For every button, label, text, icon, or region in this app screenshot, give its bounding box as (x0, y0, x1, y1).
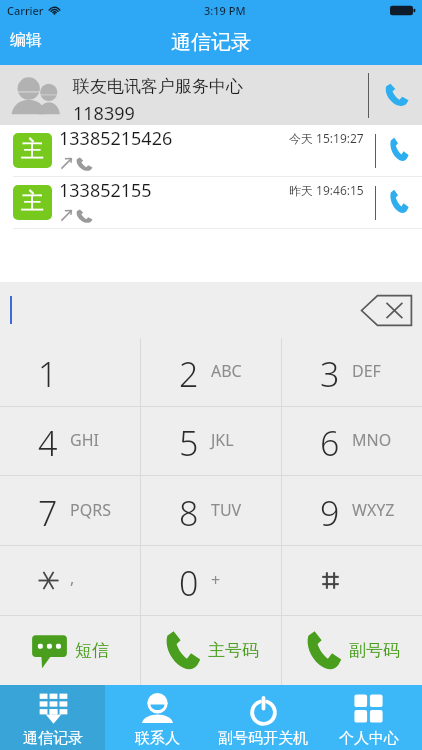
staticText: Carrier (7, 3, 44, 18)
button[interactable]: Call (376, 125, 422, 176)
button[interactable]: 编辑 (0, 22, 52, 58)
button[interactable]: 副号码 (282, 616, 422, 685)
staticText: 4 (38, 420, 58, 466)
button[interactable]: , (0, 546, 140, 615)
staticText: + (211, 569, 221, 591)
button[interactable]: Call (369, 65, 422, 125)
button[interactable]: 个人中心 (316, 685, 422, 750)
button[interactable]: 6 (282, 407, 422, 475)
button[interactable]: 5 (141, 407, 281, 475)
staticText: 6 (320, 420, 340, 466)
staticText: 通信记录 (171, 30, 251, 55)
staticText: ABC (211, 360, 242, 382)
button[interactable]: 2 (141, 338, 281, 406)
staticText: 2 (179, 351, 199, 397)
staticText: MNO (352, 429, 392, 451)
staticText: 8 (179, 490, 199, 536)
button[interactable]: Delete (360, 294, 413, 327)
staticText: JKL (211, 429, 234, 451)
staticText: 主 (21, 187, 44, 216)
staticText: 5 (179, 420, 199, 466)
button[interactable]: 8 (141, 476, 281, 545)
staticText: 3 (320, 351, 340, 397)
button[interactable]: 主 (0, 177, 422, 228)
staticText: 副号码开关机 (218, 729, 308, 748)
staticText: 1 (38, 351, 58, 397)
staticText: 通信记录 (23, 729, 83, 748)
button[interactable] (282, 546, 422, 615)
staticText: PQRS (70, 499, 111, 521)
staticText: 主 (21, 135, 44, 164)
staticText: , (70, 567, 75, 589)
button[interactable]: 4 (0, 407, 140, 475)
staticText: 13385215426 (59, 126, 173, 151)
button[interactable]: 副号码开关机 (210, 685, 316, 750)
staticText: WXYZ (352, 499, 395, 521)
button[interactable]: 3 (282, 338, 422, 406)
staticText: 118399 (73, 101, 135, 126)
staticText: 3:19 PM (204, 3, 246, 18)
staticText: TUV (211, 499, 242, 521)
staticText: 昨天 19:46:15 (289, 182, 364, 198)
staticText: 联友电讯客户服务中心 (73, 76, 243, 97)
staticText: 9 (320, 490, 340, 536)
staticText: 编辑 (10, 30, 42, 50)
staticText: 133852155 (59, 178, 152, 203)
staticText: 主号码 (208, 640, 259, 661)
button[interactable]: 7 (0, 476, 140, 545)
button[interactable]: 9 (282, 476, 422, 545)
staticText: 0 (179, 560, 199, 606)
staticText: 7 (38, 490, 58, 536)
button[interactable]: 1 (0, 338, 140, 406)
staticText: 短信 (75, 640, 109, 661)
button[interactable]: 联系人 (105, 685, 210, 750)
button[interactable]: 主号码 (141, 616, 281, 685)
staticText: DEF (352, 360, 381, 382)
button[interactable]: 主 (0, 125, 422, 176)
staticText: 今天 15:19:27 (289, 130, 364, 146)
button[interactable]: 联友电讯客户服务中心 (0, 65, 422, 125)
staticText: 副号码 (349, 640, 400, 661)
staticText: 个人中心 (339, 729, 399, 748)
staticText: 联系人 (135, 729, 180, 748)
button[interactable]: 0 (141, 546, 281, 615)
button[interactable]: Call (376, 177, 422, 228)
button[interactable]: 短信 (0, 616, 140, 685)
staticText: GHI (70, 429, 99, 451)
button[interactable]: 通信记录 (0, 685, 105, 750)
